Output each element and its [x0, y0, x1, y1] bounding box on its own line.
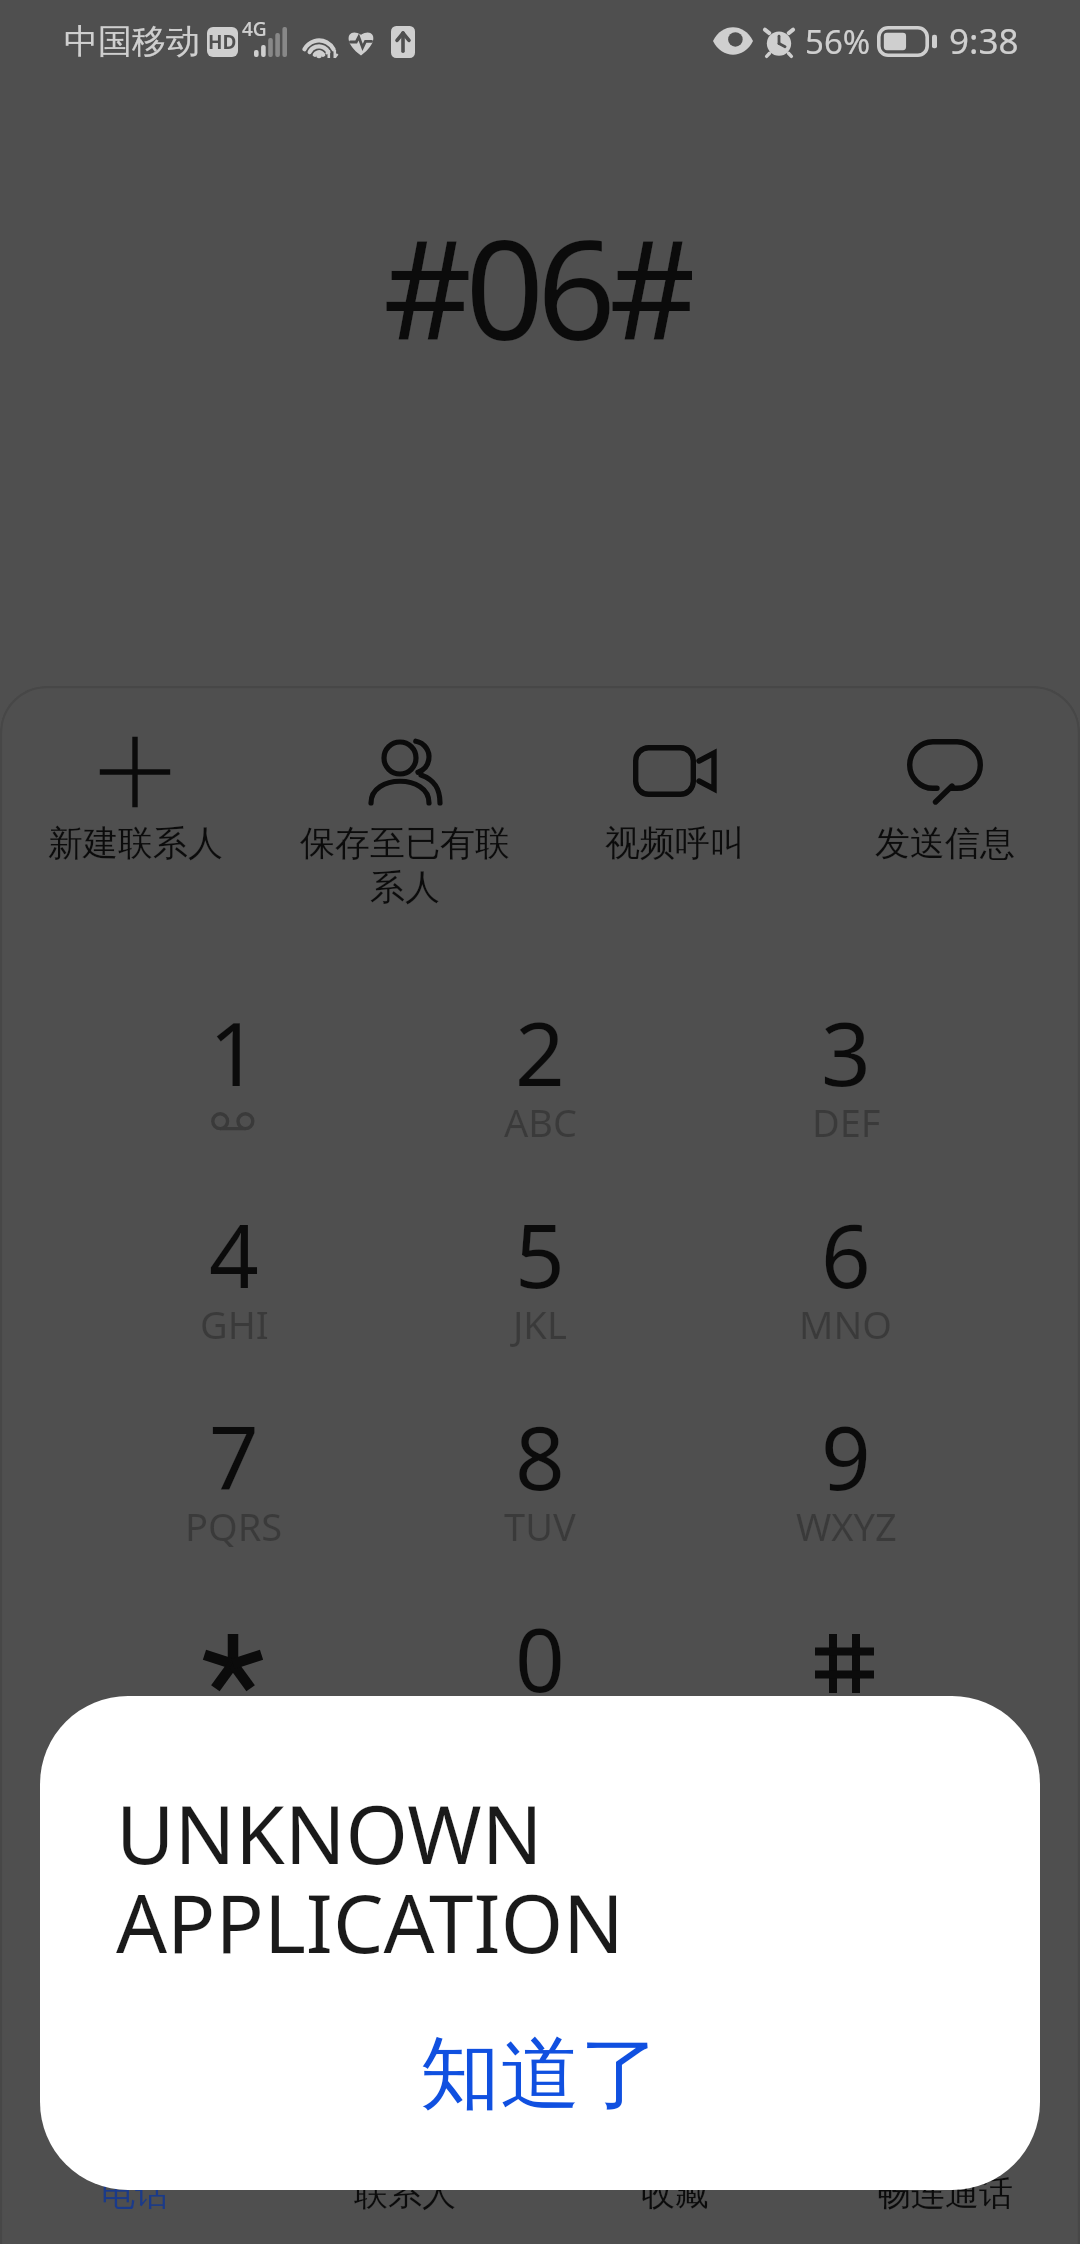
staticText: ABC: [504, 1096, 577, 1148]
staticText: HD: [208, 29, 237, 55]
button[interactable]: [693, 1587, 999, 1789]
button[interactable]: 电话: [0, 2154, 270, 2244]
staticText: PQRS: [185, 1500, 283, 1552]
button[interactable]: 4: [81, 1183, 387, 1385]
button[interactable]: 收藏: [540, 2154, 810, 2244]
button[interactable]: 知道了: [380, 2010, 700, 2139]
staticText: 4G: [242, 16, 267, 42]
staticText: 1: [209, 993, 259, 1111]
staticText: 4: [209, 1195, 259, 1313]
button[interactable]: 联系人: [270, 2154, 540, 2244]
staticText: 9:38: [949, 17, 1019, 65]
staticText: GHI: [200, 1298, 269, 1350]
staticText: 发送信息: [875, 821, 1015, 865]
staticText: 5: [515, 1195, 565, 1313]
staticText: 电话: [101, 2172, 169, 2215]
button[interactable]: 0: [387, 1587, 693, 1789]
staticText: 新建联系人: [48, 821, 223, 865]
staticText: 8: [515, 1397, 565, 1515]
button[interactable]: 5: [387, 1183, 693, 1385]
button[interactable]: 6: [693, 1183, 999, 1385]
staticText: 收藏: [641, 2172, 709, 2215]
staticText: 7: [209, 1397, 259, 1515]
button[interactable]: 7: [81, 1385, 387, 1587]
other: Video call: [633, 745, 717, 799]
staticText: 中国移动: [64, 20, 200, 63]
staticText: 3: [821, 993, 871, 1111]
button[interactable]: Video call: [540, 686, 810, 946]
staticText: 6: [821, 1195, 871, 1313]
button[interactable]: Save to existing contact: [270, 686, 540, 946]
staticText: DEF: [812, 1096, 881, 1148]
staticText: 9: [821, 1397, 871, 1515]
button[interactable]: 2: [387, 981, 693, 1183]
staticText: MNO: [799, 1298, 893, 1350]
staticText: TUV: [504, 1500, 576, 1552]
staticText: 保存至已有联 系人: [300, 821, 510, 909]
button[interactable]: 9: [693, 1385, 999, 1587]
button[interactable]: 3: [693, 981, 999, 1183]
staticText: 0: [515, 1599, 565, 1717]
staticText: 畅连通话: [877, 2172, 1013, 2215]
staticText: JKL: [513, 1298, 567, 1350]
button[interactable]: Create new contact: [0, 686, 270, 946]
staticText: 56%: [805, 19, 871, 64]
button[interactable]: [81, 1587, 387, 1789]
staticText: UNKNOWN APPLICATION: [116, 1778, 656, 1976]
button[interactable]: 畅连通话: [810, 2154, 1080, 2244]
staticText: #06#: [383, 192, 692, 372]
button[interactable]: 1: [81, 981, 387, 1183]
button[interactable]: Send message: [810, 686, 1080, 946]
staticText: 知道了: [420, 2024, 660, 2125]
staticText: WXYZ: [796, 1500, 897, 1552]
other: Send message: [907, 739, 983, 805]
staticText: 视频呼叫: [605, 821, 745, 865]
other: Create new contact: [101, 738, 169, 806]
button[interactable]: 8: [387, 1385, 693, 1587]
other: Save to existing contact: [365, 739, 445, 805]
staticText: 2: [515, 993, 565, 1111]
staticText: 联系人: [354, 2172, 456, 2215]
